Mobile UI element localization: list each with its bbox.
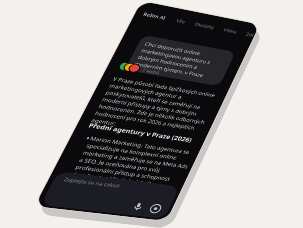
staticText: V Praze působí řada špičkových online ma… <box>13 99 135 162</box>
button[interactable]: Zdroje <box>129 13 139 21</box>
button[interactable]: Zeptejte se na cokoli <box>6 223 136 228</box>
button[interactable]: Chci doporučit online marketingovou agen… <box>20 43 127 91</box>
staticText: Přední agentury v Praze (2026) <box>13 159 125 169</box>
staticText: Marion Marketing: Tato agentura se speci… <box>21 175 136 228</box>
staticText: Zdroje <box>129 13 139 21</box>
staticText: Chci doporučit online marketingovou agen… <box>27 49 120 85</box>
